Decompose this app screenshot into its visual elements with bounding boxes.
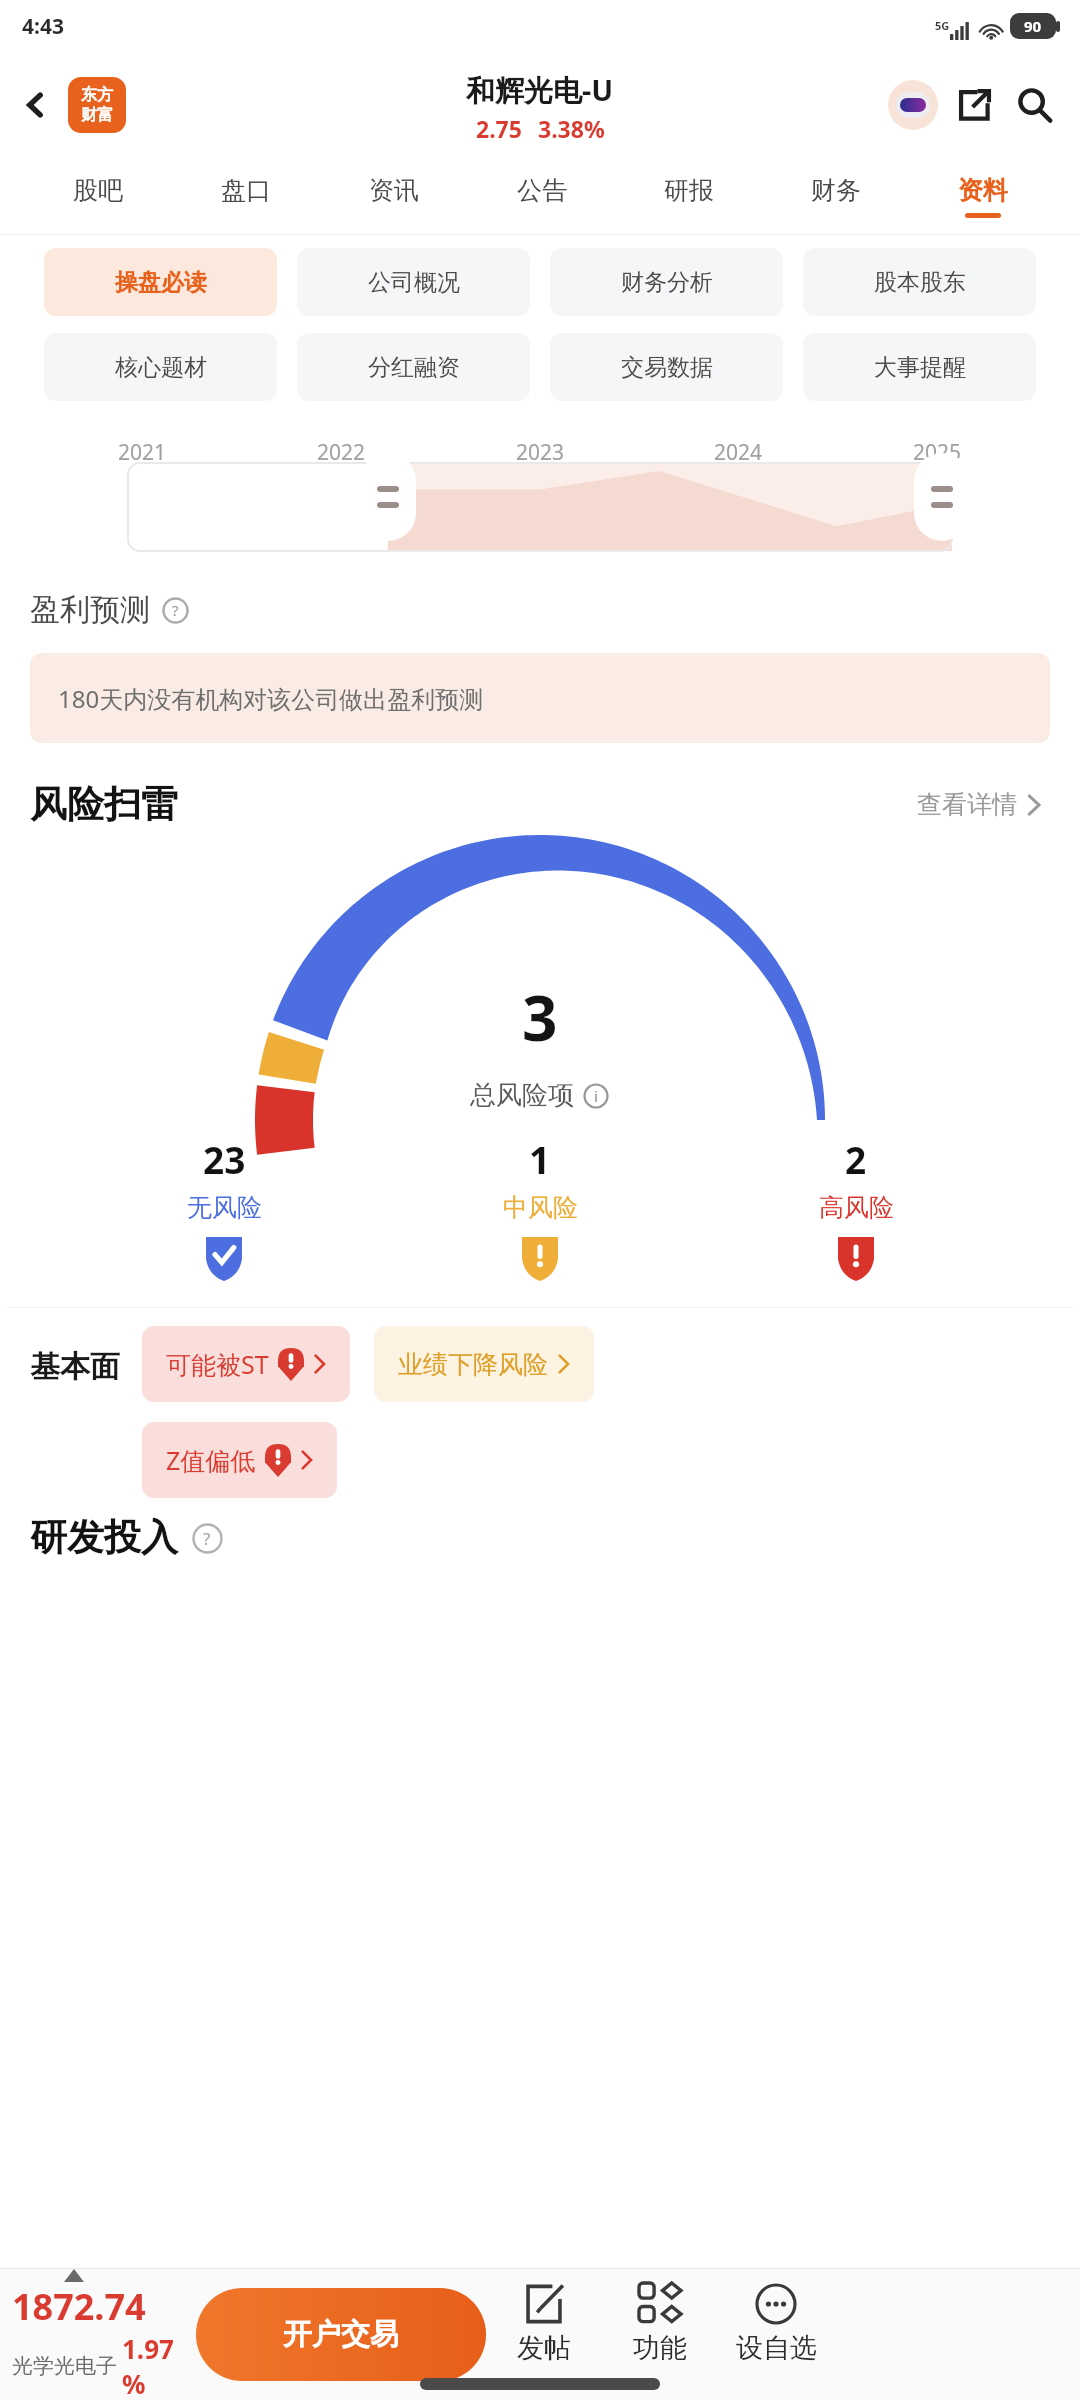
button[interactable]: 研报 [615,157,762,235]
staticText: 和辉光电-U [466,70,614,110]
staticText: 2 [845,1134,867,1184]
staticText: 分红融资 [368,353,460,382]
staticText: 盈利预测 [30,591,150,629]
staticText: 公司概况 [368,268,460,297]
button[interactable]: Share [944,75,1004,135]
button[interactable]: 查看详情 [909,781,1050,828]
staticText: 中风险 [503,1192,578,1223]
staticText: 风险扫雷 [30,781,178,828]
staticText: 4:43 [22,12,64,41]
button[interactable]: 开户交易 [196,2288,486,2381]
staticText: 东方 [81,85,113,105]
button[interactable]: 设自选 [718,2269,834,2400]
button[interactable]: 23 [66,1134,382,1281]
button[interactable]: 财务 [762,157,909,235]
staticText: 资讯 [369,175,419,206]
button[interactable]: Search [1004,74,1066,136]
staticText: 2.75 [476,113,522,144]
staticText: i [594,1086,598,1106]
staticText: 功能 [633,2331,687,2365]
staticText: 股吧 [73,175,123,206]
staticText: 核心题材 [115,353,207,382]
staticText: Z值偏低 [166,1443,256,1477]
button[interactable]: Back [8,77,64,133]
button[interactable]: 财务分析 [550,248,783,316]
staticText: 股本股东 [874,268,966,297]
button[interactable]: 1872.74 [0,2269,196,2400]
button[interactable]: 股吧 [24,157,172,235]
button[interactable]: 业绩下降风险 [374,1326,594,1402]
button[interactable]: 功能 [602,2269,718,2400]
button[interactable]: Z值偏低 [142,1422,337,1498]
button[interactable]: 操盘必读 [44,248,277,316]
button[interactable]: 1 [382,1134,698,1281]
button[interactable]: Range handle [912,453,972,541]
staticText: 可能被ST [166,1347,269,1381]
staticText: 业绩下降风险 [398,1349,548,1380]
button[interactable]: Help [190,1521,224,1555]
staticText: 23 [203,1134,246,1184]
staticText: 研发投入 [30,1514,178,1561]
staticText: 1 [529,1134,551,1184]
button[interactable]: 发帖 [486,2269,602,2400]
staticText: 财富 [81,105,113,125]
button[interactable]: 交易数据 [550,333,783,401]
staticText: 高风险 [819,1192,894,1223]
button[interactable]: 东方财富 [68,77,126,133]
button[interactable]: Range handle [358,453,418,541]
staticText: 2022 [317,438,366,467]
button[interactable]: Info [582,1082,610,1110]
staticText: 1.97% [122,2331,196,2400]
staticText: 大事提醒 [874,353,966,382]
staticText: 5G [935,18,950,33]
staticText: 公告 [517,175,567,206]
staticText: ? [203,1527,211,1550]
staticText: 查看详情 [917,789,1017,820]
staticText: 3 [522,975,558,1059]
staticText: 设自选 [736,2331,817,2365]
staticText: 基本面 [30,1348,120,1386]
staticText: 2025 [913,438,962,467]
button[interactable]: 资料 [909,157,1056,235]
staticText: 180天内没有机构对该公司做出盈利预测 [58,682,484,715]
staticText: 资料 [958,175,1008,206]
staticText: 盘口 [221,175,271,206]
staticText: 发帖 [517,2331,571,2365]
staticText: 总风险项 [470,1079,574,1112]
staticText: 研报 [664,175,714,206]
button[interactable]: 资讯 [320,157,468,235]
button[interactable]: 可能被ST [142,1326,350,1402]
button[interactable]: 股本股东 [803,248,1036,316]
staticText: 2024 [714,438,763,467]
staticText: 2021 [118,438,167,467]
staticText: 光学光电子 [12,2353,117,2379]
staticText: 2023 [516,438,565,467]
button[interactable]: 公告 [468,157,615,235]
button[interactable]: 2 [698,1134,1014,1281]
button[interactable]: Help [160,595,190,625]
staticText: 无风险 [187,1192,262,1223]
staticText: 财务 [811,175,861,206]
staticText: ? [172,600,179,620]
button[interactable]: 分红融资 [297,333,530,401]
button[interactable]: 公司概况 [297,248,530,316]
button[interactable]: 大事提醒 [803,333,1036,401]
button[interactable]: 核心题材 [44,333,277,401]
staticText: 财务分析 [621,268,713,297]
staticText: 1872.74 [12,2282,146,2331]
button[interactable]: AI Assistant [882,74,944,136]
button[interactable]: 盘口 [172,157,320,235]
staticText: 开户交易 [283,2316,399,2353]
staticText: 操盘必读 [115,268,207,297]
staticText: 90 [1024,16,1042,36]
staticText: 3.38% [538,113,605,144]
staticText: 交易数据 [621,353,713,382]
